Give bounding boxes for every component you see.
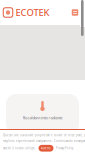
button[interactable]: Menu bbox=[71, 4, 85, 20]
staticText: ECOTEK bbox=[15, 6, 49, 19]
staticText: Riscaldamento radiante bbox=[22, 115, 62, 120]
staticText: migliore esperienza di navigazione. Cont… bbox=[3, 139, 85, 143]
button[interactable]: Accetto bbox=[38, 145, 53, 152]
staticText: Accetto bbox=[41, 146, 51, 150]
button[interactable]: ECOTEK bbox=[0, 2, 49, 23]
button[interactable]: Privacy Policy bbox=[56, 146, 73, 150]
staticText: Privacy Policy bbox=[56, 146, 73, 150]
staticText: accetti il nostro utilizzo. bbox=[3, 146, 36, 150]
staticText: Questo sito usa cookie proprietari e coo… bbox=[3, 133, 85, 137]
